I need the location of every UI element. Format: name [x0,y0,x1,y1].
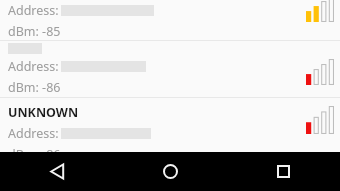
staticText: Address: [8,125,59,142]
staticText: UNKNOWN [8,104,79,121]
button[interactable]: UNKNOWN [0,98,340,152]
staticText: dBm: -85 [8,23,61,40]
button[interactable]: Recent apps [227,152,340,191]
staticText: Address: [8,58,59,75]
button[interactable]: Home [114,152,227,191]
button[interactable]: Back [0,152,114,191]
staticText: dBm: -86 [8,79,61,96]
staticText: Address: [8,2,59,19]
button[interactable]: Address: [0,41,340,97]
button[interactable]: Address: [0,0,340,40]
staticText: dBm: -86 [8,146,61,152]
